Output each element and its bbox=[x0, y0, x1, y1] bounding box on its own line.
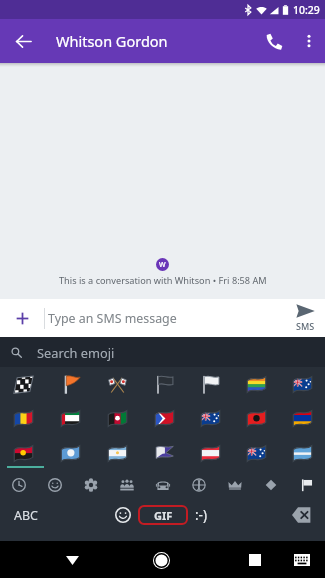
staticText: SMS bbox=[296, 320, 315, 332]
button[interactable]: Flag emoji bbox=[187, 401, 233, 436]
button[interactable]: Backspace bbox=[292, 507, 312, 523]
button[interactable]: Flag emoji bbox=[187, 436, 233, 471]
button[interactable]: Flag emoji bbox=[0, 401, 47, 436]
button[interactable]: Flag emoji bbox=[141, 367, 187, 401]
button[interactable]: Flags bbox=[289, 471, 325, 499]
button[interactable]: Activities bbox=[181, 471, 217, 499]
button[interactable]: Flag emoji bbox=[94, 436, 141, 471]
button[interactable]: Food bbox=[109, 471, 145, 499]
button[interactable]: Flag emoji bbox=[279, 367, 325, 401]
button[interactable]: Search emoji bbox=[0, 337, 325, 367]
button[interactable]: Recent bbox=[0, 471, 37, 499]
staticText: 10:29 bbox=[293, 3, 320, 17]
button[interactable]: Flag emoji bbox=[47, 436, 94, 471]
button[interactable]: Keyboard bbox=[288, 546, 316, 574]
button[interactable]: Home bbox=[147, 546, 175, 574]
button[interactable]: Call bbox=[248, 19, 292, 63]
button[interactable]: Emoticons bbox=[188, 502, 214, 528]
button[interactable]: Flag emoji bbox=[0, 367, 47, 401]
staticText: ABC bbox=[14, 507, 39, 524]
button[interactable]: Nature bbox=[73, 471, 109, 499]
button[interactable]: Flag emoji bbox=[233, 367, 279, 401]
button[interactable]: Attach bbox=[0, 299, 44, 337]
button[interactable]: Objects bbox=[217, 471, 253, 499]
button[interactable]: Flag emoji bbox=[233, 401, 279, 436]
button[interactable]: Flag emoji bbox=[187, 367, 233, 401]
button[interactable]: Travel bbox=[145, 471, 181, 499]
button[interactable]: GIF bbox=[138, 505, 188, 525]
staticText: :-) bbox=[195, 506, 208, 524]
staticText: GIF bbox=[154, 508, 173, 523]
button[interactable]: Flag emoji bbox=[0, 436, 47, 471]
button[interactable]: Flag emoji bbox=[233, 436, 279, 471]
staticText: Whitson Gordon bbox=[56, 31, 168, 51]
button[interactable]: Flag emoji bbox=[279, 436, 325, 471]
button[interactable]: Flag emoji bbox=[141, 401, 187, 436]
button[interactable]: Flag emoji bbox=[279, 401, 325, 436]
button[interactable]: Emoji bbox=[110, 502, 136, 528]
staticText: Search emoji bbox=[37, 344, 115, 361]
button[interactable]: More options bbox=[292, 19, 325, 63]
staticText: This is a conversation with Whitson • Fr… bbox=[59, 274, 267, 287]
button[interactable]: Recents bbox=[241, 546, 269, 574]
staticText: Type an SMS message bbox=[48, 310, 285, 327]
staticText: W bbox=[159, 260, 166, 270]
button[interactable]: Send SMS bbox=[285, 299, 325, 337]
button[interactable]: Flag emoji bbox=[94, 401, 141, 436]
button[interactable]: Flag emoji bbox=[141, 436, 187, 471]
button[interactable]: Symbols bbox=[253, 471, 289, 499]
button[interactable]: Flag emoji bbox=[47, 401, 94, 436]
button[interactable]: ABC bbox=[6, 501, 47, 530]
button[interactable]: Flag emoji bbox=[94, 367, 141, 401]
button[interactable]: Back bbox=[58, 546, 86, 574]
button[interactable]: Flag emoji bbox=[47, 367, 94, 401]
button[interactable]: Back bbox=[0, 19, 46, 63]
button[interactable]: Smileys bbox=[37, 471, 73, 499]
